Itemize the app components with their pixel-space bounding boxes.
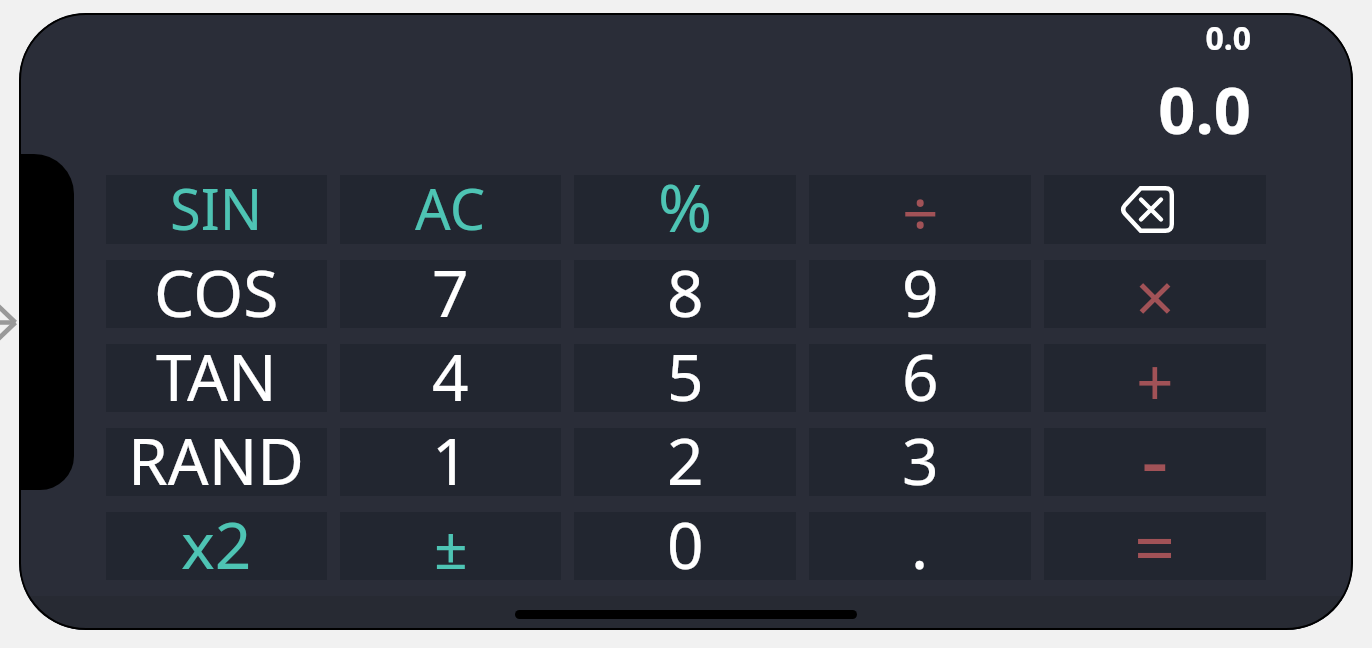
button[interactable]: + [1044,344,1266,412]
staticText: 5 [667,333,704,420]
staticText: % [658,163,713,252]
other: Backspace [1119,186,1174,233]
staticText: 8 [667,249,704,336]
staticText: 3 [902,417,939,504]
button[interactable]: x2 [106,512,327,580]
staticText: SIN [170,170,263,246]
button[interactable]: 6 [809,344,1031,412]
button[interactable]: RAND [106,428,327,496]
staticText: x2 [181,501,252,588]
staticText: COS [154,249,279,336]
button[interactable]: 9 [809,260,1031,328]
staticText: + [1136,335,1174,425]
button[interactable]: 0 [574,512,796,580]
button[interactable]: Backspace [1044,175,1266,244]
staticText: 0.0 [19,16,1251,60]
staticText: - [1141,399,1169,516]
other: Next screen [0,300,17,345]
staticText: 6 [902,333,939,420]
button[interactable]: ± [340,512,561,580]
button[interactable]: 4 [340,344,561,412]
staticText: RAND [128,417,305,504]
staticText: AC [415,170,486,246]
staticText: ÷ [902,169,939,256]
staticText: ± [434,506,468,586]
button[interactable]: 5 [574,344,796,412]
button[interactable]: SIN [106,175,327,244]
button[interactable]: 8 [574,260,796,328]
button[interactable]: = [1044,512,1266,580]
staticText: 9 [902,249,939,336]
button[interactable]: TAN [106,344,327,412]
staticText: 0.0 [19,65,1251,154]
button[interactable]: AC [340,175,561,244]
button[interactable]: 1 [340,428,561,496]
staticText: = [1134,497,1176,595]
button[interactable]: 7 [340,260,561,328]
staticText: 4 [432,333,469,420]
button[interactable]: 3 [809,428,1031,496]
staticText: . [911,501,929,588]
staticText: × [1135,248,1176,343]
button[interactable]: % [574,175,796,244]
button[interactable]: 2 [574,428,796,496]
staticText: 7 [432,249,469,336]
staticText: 1 [432,417,469,504]
staticText: 2 [667,417,704,504]
staticText: TAN [156,333,277,420]
staticText: 0 [667,501,704,588]
button[interactable]: COS [106,260,327,328]
button[interactable]: × [1044,260,1266,328]
button[interactable]: ÷ [809,175,1031,244]
button[interactable]: - [1044,428,1266,496]
button[interactable]: . [809,512,1031,580]
